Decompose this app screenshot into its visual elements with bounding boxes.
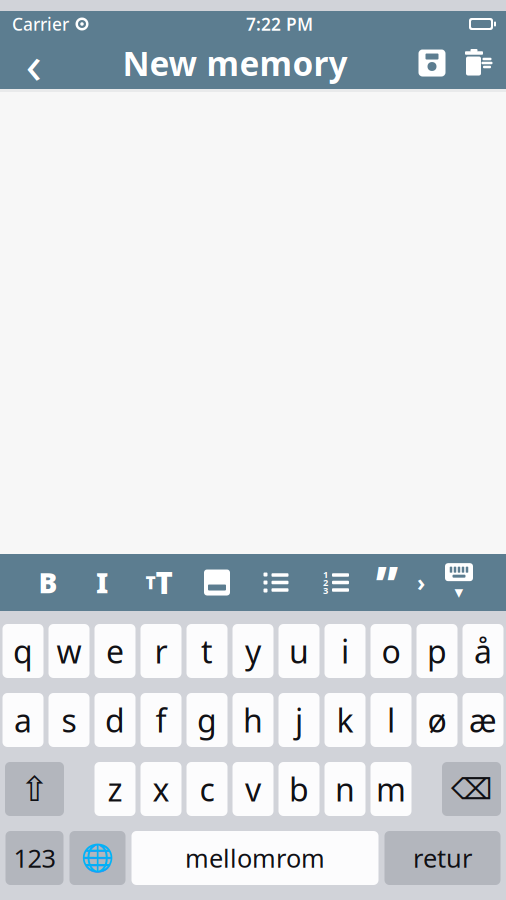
staticText: a: [14, 699, 32, 741]
button[interactable]: h: [232, 693, 273, 747]
button[interactable]: l: [370, 693, 411, 747]
button[interactable]: å: [462, 624, 503, 678]
staticText: ›: [417, 567, 425, 597]
button[interactable]: Delete: [442, 762, 501, 816]
staticText: p: [427, 630, 447, 672]
button[interactable]: Text size: [130, 554, 188, 611]
button[interactable]: u: [278, 624, 319, 678]
staticText: v: [245, 768, 261, 810]
staticText: h: [243, 699, 263, 741]
button[interactable]: t: [186, 624, 227, 678]
button[interactable]: x: [140, 762, 181, 816]
staticText: å: [474, 630, 492, 672]
staticText: ”: [375, 552, 398, 613]
staticText: m: [376, 768, 406, 810]
staticText: 🌐: [81, 843, 114, 873]
button[interactable]: s: [48, 693, 89, 747]
staticText: z: [107, 768, 122, 810]
staticText: n: [335, 768, 355, 810]
button[interactable]: q: [2, 624, 43, 678]
button[interactable]: d: [94, 693, 135, 747]
staticText: 2: [323, 576, 328, 589]
button[interactable]: c: [186, 762, 227, 816]
button[interactable]: Block quote: [366, 554, 408, 611]
staticText: ▾: [454, 582, 463, 602]
button[interactable]: n: [324, 762, 365, 816]
button[interactable]: z: [94, 762, 135, 816]
staticText: mellomrom: [185, 841, 325, 875]
button[interactable]: retur: [384, 831, 500, 885]
staticText: ⇧: [20, 769, 49, 809]
staticText: b: [289, 768, 309, 810]
button[interactable]: Hide keyboard: [434, 554, 484, 611]
staticText: New memory: [122, 41, 347, 85]
staticText: ø: [427, 699, 446, 741]
staticText: u: [289, 630, 309, 672]
button[interactable]: r: [140, 624, 181, 678]
staticText: retur: [413, 841, 472, 875]
staticText: d: [105, 699, 125, 741]
staticText: t: [201, 630, 213, 672]
staticText: i: [341, 630, 349, 672]
button[interactable]: Bulleted list: [246, 554, 306, 611]
staticText: I: [96, 564, 108, 601]
button[interactable]: m: [370, 762, 411, 816]
staticText: o: [381, 630, 400, 672]
button[interactable]: y: [232, 624, 273, 678]
button[interactable]: ø: [416, 693, 457, 747]
button[interactable]: o: [370, 624, 411, 678]
staticText: r: [154, 630, 167, 672]
button[interactable]: Italic: [74, 554, 130, 611]
button[interactable]: v: [232, 762, 273, 816]
staticText: 3: [323, 584, 328, 597]
staticText: f: [155, 699, 166, 741]
staticText: Carrier: [12, 12, 69, 35]
button[interactable]: g: [186, 693, 227, 747]
button[interactable]: Back: [8, 37, 60, 89]
button[interactable]: mellomrom: [131, 831, 378, 885]
staticText: B: [38, 564, 57, 601]
button[interactable]: æ: [462, 693, 503, 747]
staticText: ‹: [25, 28, 42, 98]
button[interactable]: e: [94, 624, 135, 678]
staticText: y: [245, 630, 261, 672]
button[interactable]: 123: [5, 831, 63, 885]
staticText: 7:22 PM: [246, 12, 313, 35]
button[interactable]: Insert image: [188, 554, 246, 611]
button[interactable]: More options: [408, 554, 434, 611]
button[interactable]: a: [2, 693, 43, 747]
button[interactable]: Delete: [454, 37, 502, 89]
button[interactable]: Next keyboard: [69, 831, 125, 885]
staticText: w: [56, 630, 81, 672]
button[interactable]: Bold: [22, 554, 74, 611]
staticText: l: [387, 699, 395, 741]
staticText: æ: [469, 699, 497, 741]
button[interactable]: w: [48, 624, 89, 678]
button[interactable]: Save: [410, 37, 454, 89]
staticText: e: [106, 630, 124, 672]
staticText: T: [145, 571, 155, 594]
staticText: q: [13, 630, 33, 672]
staticText: ⌫: [451, 772, 492, 806]
staticText: j: [295, 699, 303, 741]
staticText: 1: [323, 568, 328, 581]
button[interactable]: p: [416, 624, 457, 678]
button[interactable]: b: [278, 762, 319, 816]
staticText: 123: [13, 841, 55, 875]
staticText: T: [155, 563, 172, 602]
staticText: k: [336, 699, 353, 741]
staticText: g: [197, 699, 217, 741]
button[interactable]: k: [324, 693, 365, 747]
button[interactable]: j: [278, 693, 319, 747]
button[interactable]: f: [140, 693, 181, 747]
staticText: s: [61, 699, 76, 741]
button[interactable]: Shift: [5, 762, 64, 816]
staticText: x: [152, 768, 169, 810]
button[interactable]: Numbered list: [306, 554, 366, 611]
button[interactable]: i: [324, 624, 365, 678]
staticText: c: [199, 768, 214, 810]
